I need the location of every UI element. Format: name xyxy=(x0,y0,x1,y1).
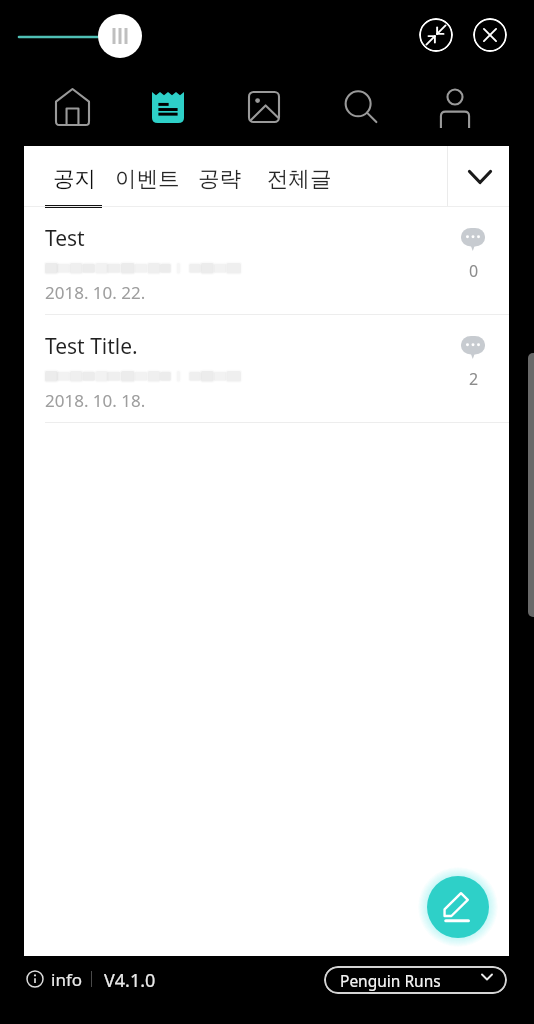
staticText: Penguin Runs xyxy=(340,970,441,991)
staticText: 2018. 10. 18. xyxy=(45,389,146,412)
button[interactable]: Profile xyxy=(427,79,483,135)
staticText: 전체글 xyxy=(267,165,332,192)
staticText: V4.1.0 xyxy=(104,968,156,993)
button[interactable]: info xyxy=(26,966,83,992)
button[interactable]: 공략 xyxy=(188,146,248,207)
staticText: info xyxy=(51,968,83,991)
staticText: 0 xyxy=(469,260,479,282)
button[interactable]: Write post xyxy=(427,876,489,938)
button[interactable]: Penguin Runs xyxy=(324,966,507,994)
button[interactable]: Test Title. xyxy=(24,315,509,423)
button[interactable]: Search xyxy=(333,79,389,135)
button[interactable]: 공지 xyxy=(43,146,101,207)
staticText: 2 xyxy=(469,368,479,390)
button[interactable]: 전체글 xyxy=(257,146,340,207)
button[interactable]: Test xyxy=(24,207,509,315)
button[interactable]: Minimize xyxy=(419,18,453,52)
button[interactable]: Board xyxy=(140,79,196,135)
staticText: 이벤트 xyxy=(115,165,180,192)
button[interactable]: Drag handle xyxy=(98,14,142,58)
button[interactable]: 이벤트 xyxy=(105,146,187,207)
staticText: Test xyxy=(45,224,85,253)
button[interactable]: Close xyxy=(473,18,507,52)
staticText: 2018. 10. 22. xyxy=(45,281,146,304)
staticText: 공지 xyxy=(53,165,96,192)
staticText: Test Title. xyxy=(45,332,138,361)
button[interactable]: Gallery xyxy=(236,79,292,135)
button[interactable]: Expand categories xyxy=(450,146,509,207)
button[interactable]: Home xyxy=(44,79,100,135)
staticText: 공략 xyxy=(198,165,241,192)
